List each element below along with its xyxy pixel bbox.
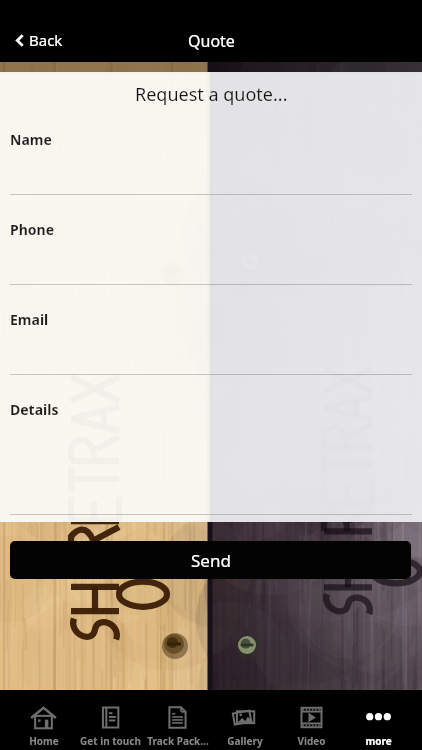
button[interactable]: Email <box>0 303 422 393</box>
button[interactable]: Back <box>6 19 69 61</box>
button[interactable]: Send <box>10 541 411 579</box>
staticText: Get in touch <box>80 734 141 748</box>
button[interactable]: Get in touch <box>77 690 144 750</box>
button[interactable]: Gallery <box>211 690 278 750</box>
staticText: Send <box>191 549 231 572</box>
staticText: Details <box>10 400 59 419</box>
staticText: Back <box>29 30 63 50</box>
staticText: Quote <box>188 30 235 52</box>
staticText: Name <box>10 130 52 149</box>
button[interactable]: Details <box>0 393 422 497</box>
button[interactable]: Video <box>278 690 345 750</box>
button[interactable]: Name <box>0 123 422 213</box>
staticText: Home <box>29 734 59 748</box>
button[interactable]: Phone <box>0 213 422 303</box>
staticText: Phone <box>10 220 55 239</box>
staticText: Gallery <box>227 734 263 748</box>
button[interactable]: Track Pack... <box>144 690 211 750</box>
staticText: Video <box>297 734 326 748</box>
staticText: more <box>365 734 392 748</box>
staticText: Track Pack... <box>147 734 209 748</box>
staticText: Email <box>10 310 49 329</box>
staticText: Request a quote... <box>135 82 288 107</box>
button[interactable]: more <box>345 690 412 750</box>
button[interactable]: Home <box>10 690 77 750</box>
